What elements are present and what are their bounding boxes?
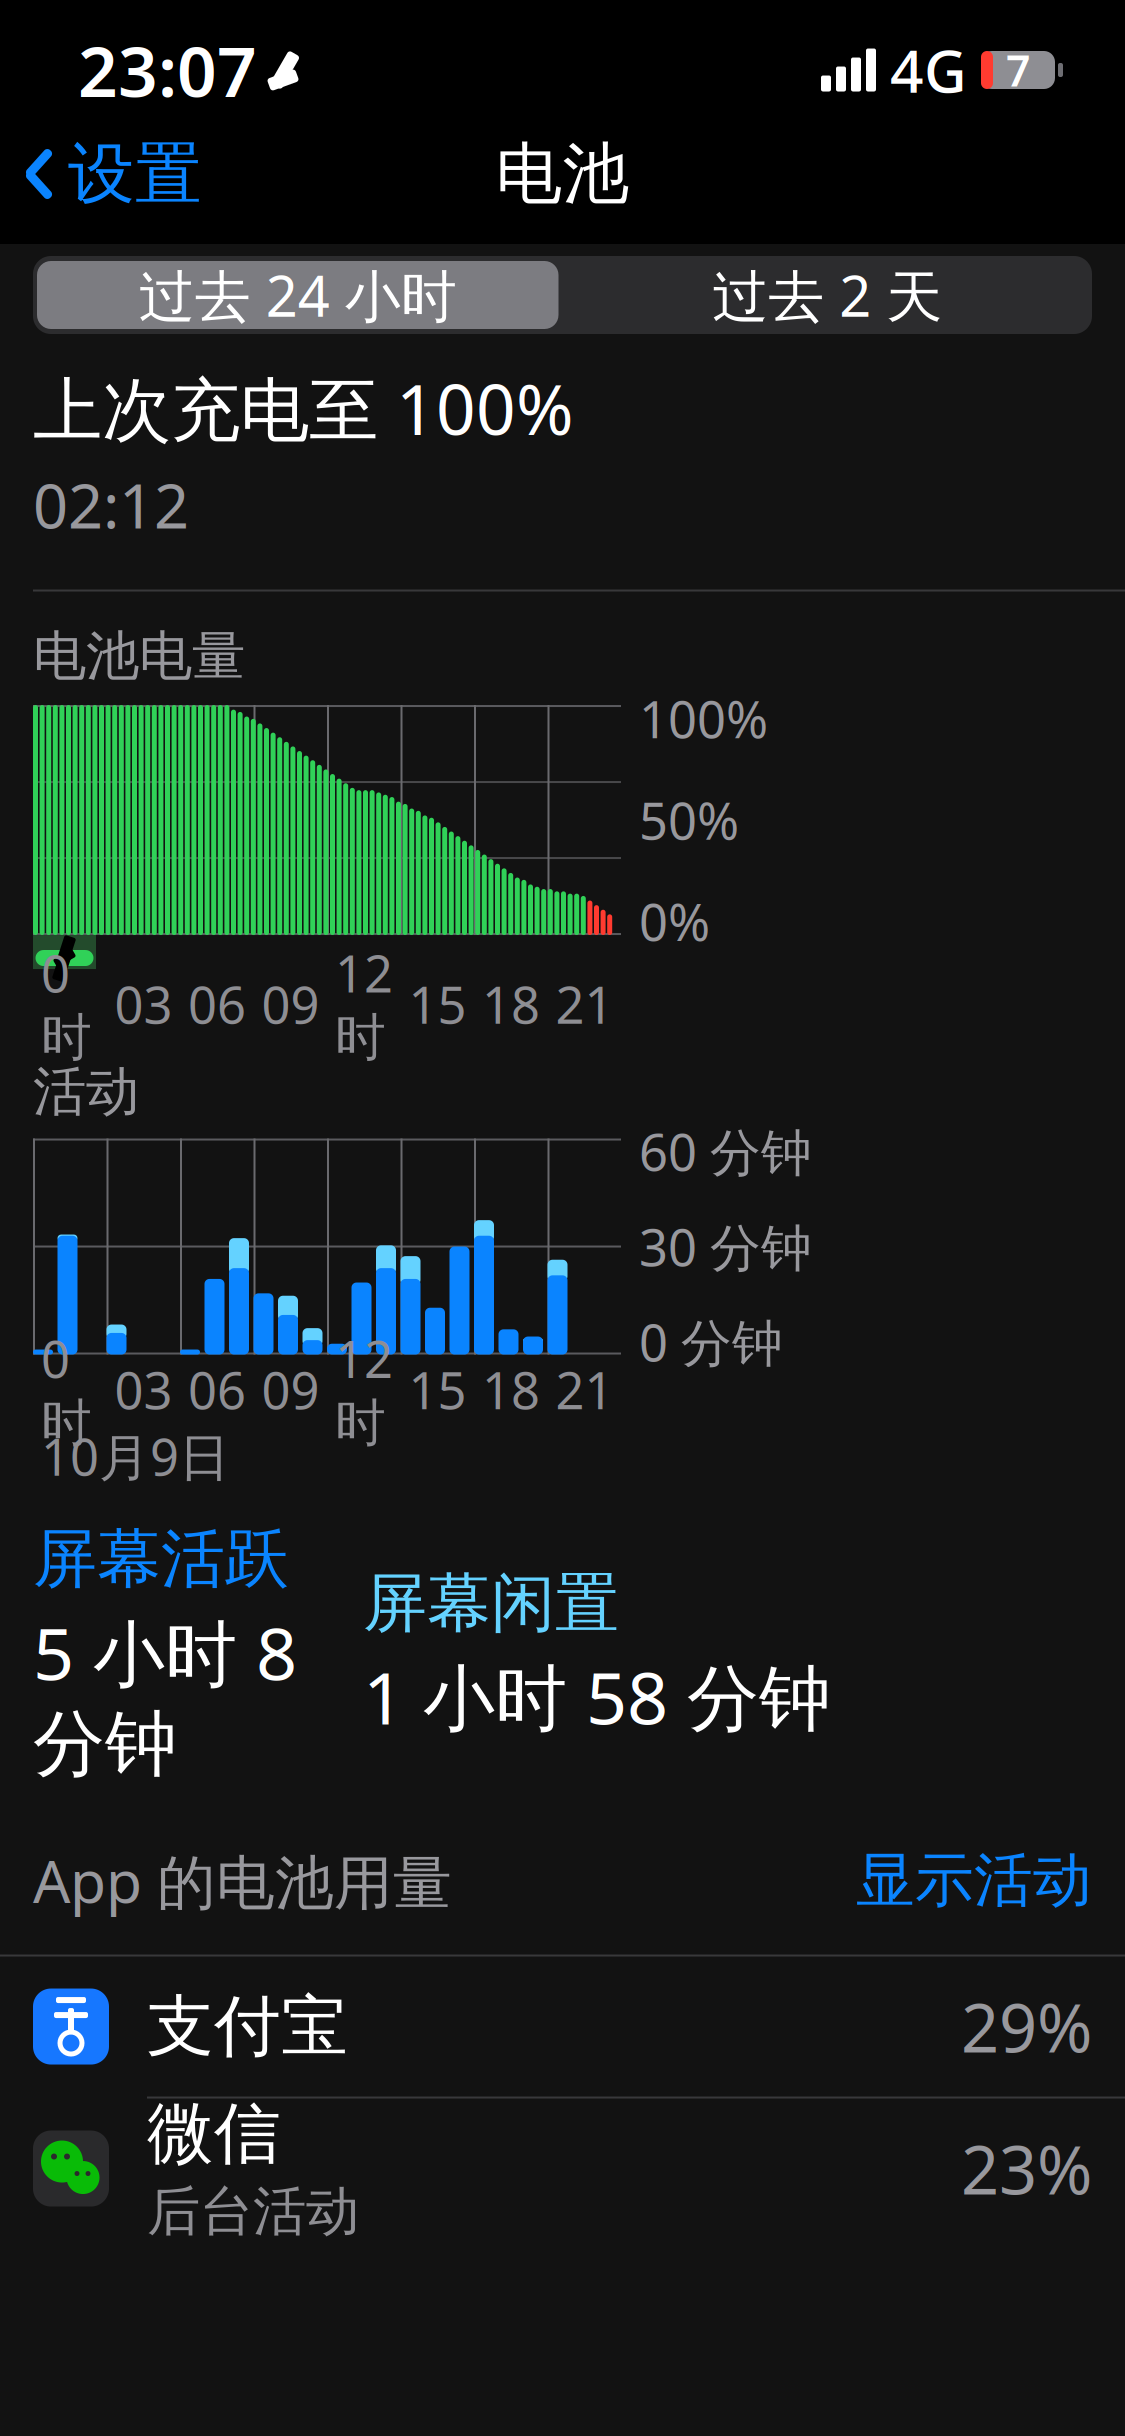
staticText: 0时 — [41, 1325, 92, 1454]
staticText: 显示活动 — [856, 1844, 1092, 1917]
staticText: 设置 — [68, 133, 202, 215]
staticText: 过去 24 小时 — [139, 258, 457, 332]
staticText: 60 分钟 — [639, 1118, 812, 1185]
staticText: 02:12 — [33, 464, 189, 545]
staticText: 10月9日 — [41, 1422, 230, 1490]
button[interactable]: 过去 2 天 — [562, 257, 1092, 333]
staticText: 03 — [114, 1356, 172, 1423]
staticText: 15 — [408, 970, 466, 1038]
staticText: 18 — [482, 1356, 540, 1423]
staticText: 屏幕闲置 — [363, 1564, 619, 1643]
staticText: 12时 — [335, 1325, 393, 1454]
staticText: 电池 — [495, 133, 629, 215]
staticText: 4G — [890, 31, 967, 109]
staticText: 29% — [961, 1982, 1092, 2071]
staticText: 21 — [555, 1356, 613, 1423]
staticText: 后台活动 — [147, 2179, 359, 2244]
staticText: 23% — [961, 2124, 1092, 2213]
staticText: 过去 2 天 — [712, 258, 942, 332]
staticText: 支付宝 — [147, 1986, 348, 2067]
staticText: 15 — [408, 1356, 466, 1423]
button[interactable]: 支付宝 — [0, 1956, 1125, 2096]
staticText: 09 — [261, 970, 319, 1038]
button[interactable]: 显示活动 — [856, 1834, 1092, 1927]
staticText: 09 — [261, 1356, 319, 1423]
staticText: 活动 — [33, 1059, 139, 1124]
button[interactable]: 微信 — [0, 2098, 1125, 2238]
staticText: 电池电量 — [33, 623, 245, 689]
staticText: 5 小时 8 分钟 — [33, 1604, 297, 1788]
staticText: 0 分钟 — [639, 1308, 783, 1375]
button[interactable]: 过去 24 小时 — [33, 257, 562, 333]
staticText: 30 分钟 — [639, 1213, 812, 1280]
staticText: 0时 — [41, 939, 92, 1069]
staticText: 7 — [1006, 42, 1030, 98]
staticText: App 的电池用量 — [33, 1841, 452, 1920]
staticText: 微信 — [147, 2093, 281, 2175]
staticText: 0% — [639, 888, 710, 955]
staticText: 上次充电至 100% — [33, 362, 574, 454]
staticText: 03 — [114, 970, 172, 1038]
staticText: 21 — [555, 970, 613, 1038]
button[interactable]: 设置 — [0, 119, 202, 229]
staticText: 12时 — [335, 939, 393, 1069]
staticText: 屏幕活跃 — [33, 1520, 289, 1598]
staticText: 18 — [482, 970, 540, 1038]
staticText: 50% — [639, 786, 739, 854]
staticText: 06 — [188, 1356, 246, 1423]
staticText: 23:07 — [78, 24, 257, 116]
staticText: 06 — [188, 970, 246, 1038]
staticText: 1 小时 58 分钟 — [363, 1649, 831, 1744]
staticText: 100% — [639, 685, 768, 752]
